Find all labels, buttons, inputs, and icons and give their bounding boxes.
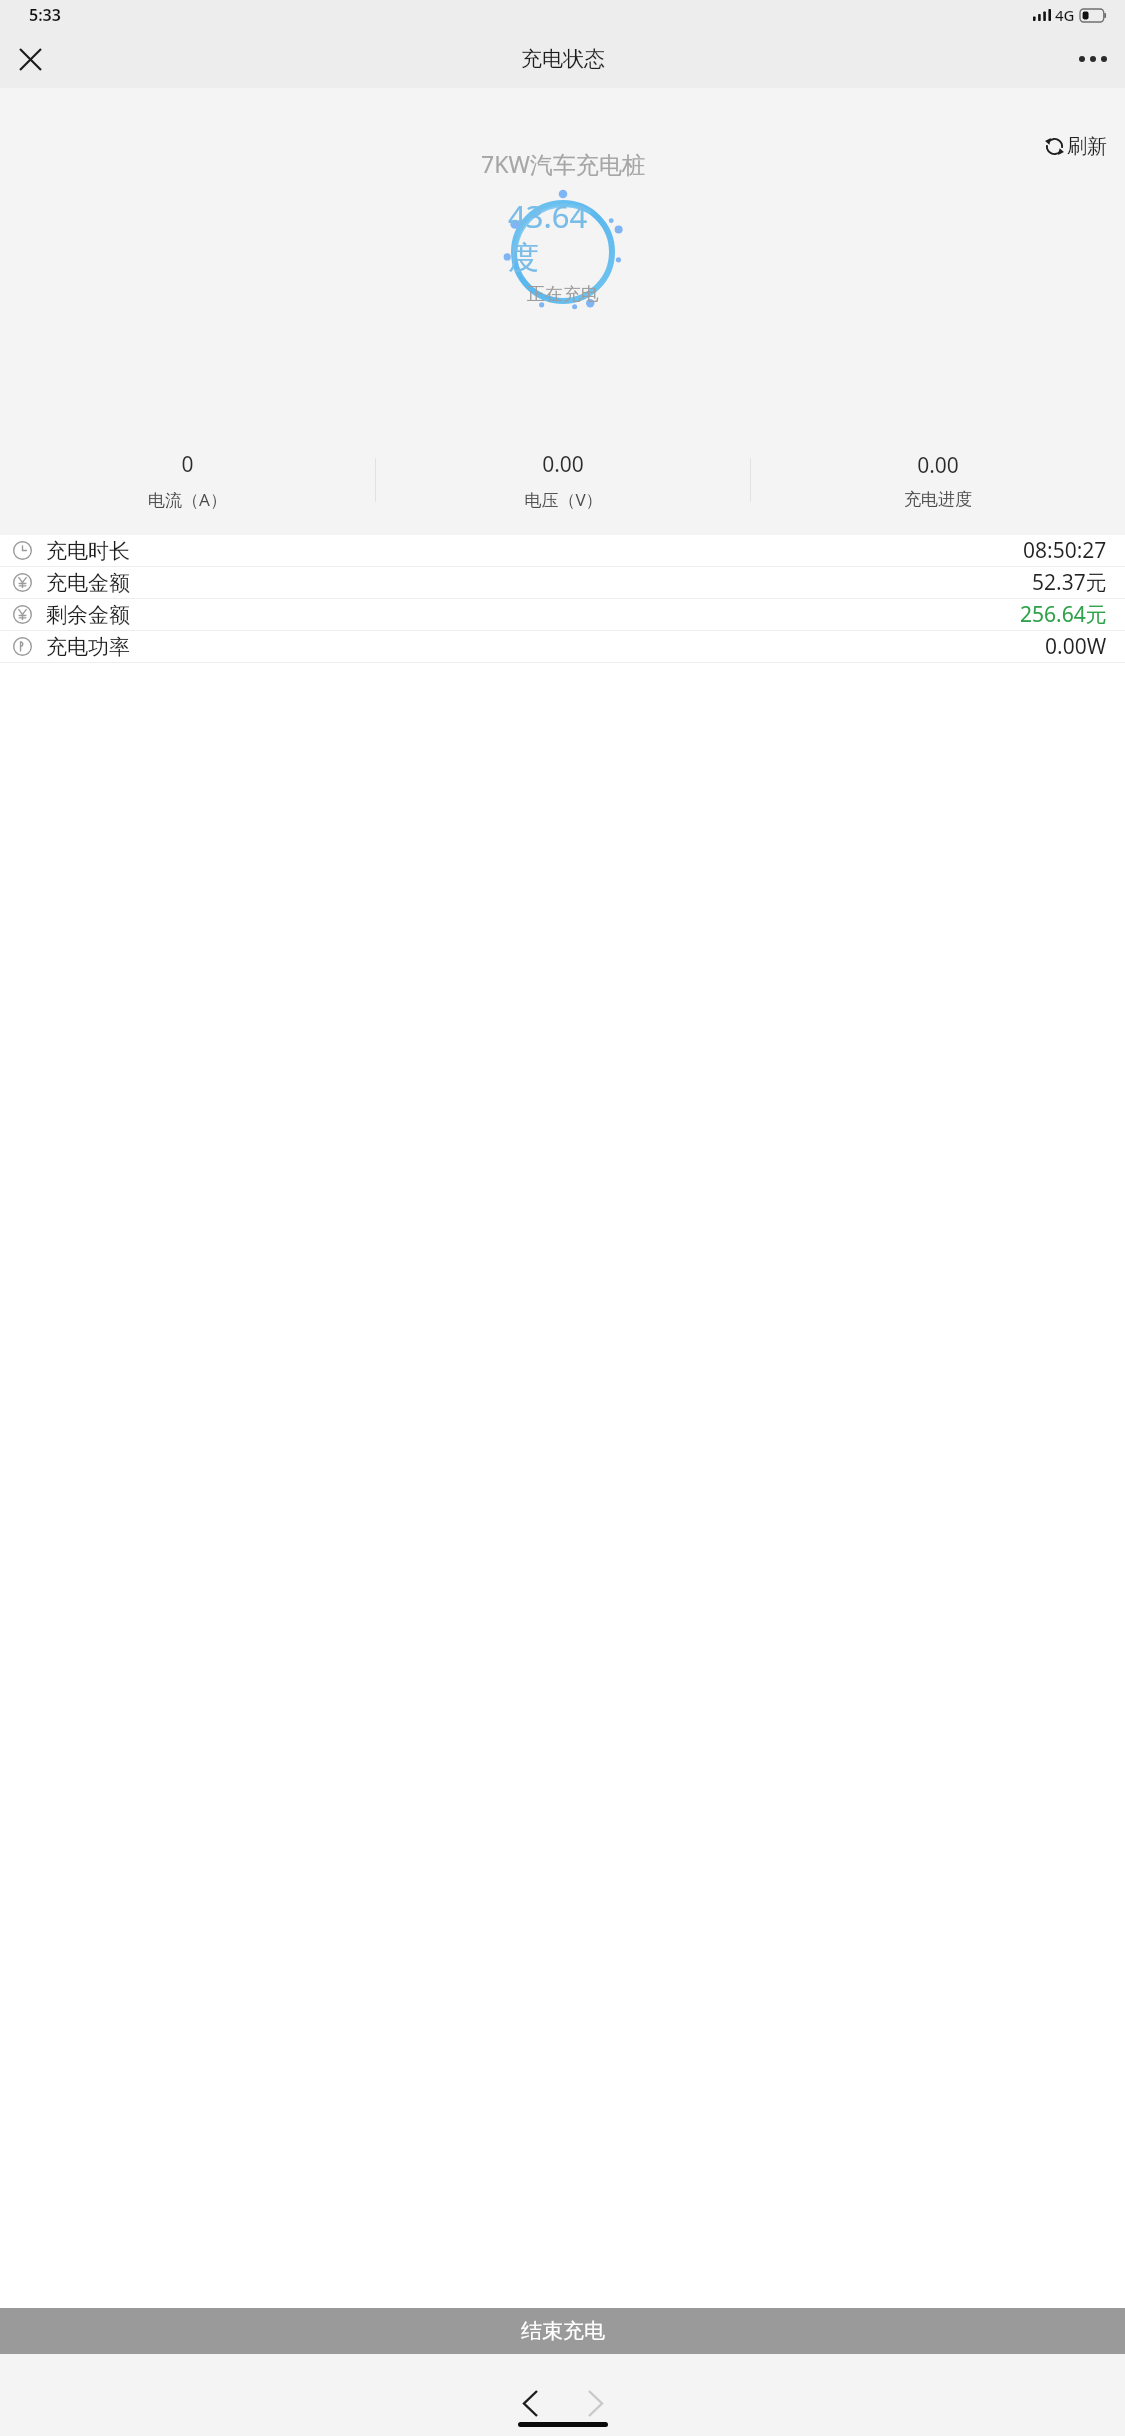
staticText: 7KW汽车充电桩 — [481, 148, 645, 179]
staticText: 结束充电 — [521, 2318, 605, 2344]
staticText: 电流（A） — [148, 488, 227, 511]
staticText: 刷新 — [1067, 134, 1107, 159]
staticText: 0.00 — [542, 450, 584, 479]
button[interactable]: 充电时长 — [0, 535, 1125, 566]
staticText: 43.64度 — [508, 195, 618, 277]
staticText: 0.00 — [917, 451, 959, 480]
staticText: 08:50:27 — [1023, 536, 1107, 565]
staticText: 4G — [1055, 5, 1075, 25]
button[interactable]: 充电金额 — [0, 567, 1125, 598]
button[interactable]: Back — [507, 2380, 553, 2426]
staticText: 5:33 — [29, 4, 61, 26]
button[interactable]: Forward — [572, 2380, 618, 2426]
staticText: 0.00W — [1045, 632, 1107, 661]
staticText: 0 — [181, 450, 194, 479]
button[interactable]: Close — [6, 35, 54, 83]
staticText: 充电进度 — [904, 489, 972, 510]
staticText: 充电功率 — [46, 634, 130, 660]
staticText: 电压（V） — [524, 488, 603, 511]
staticText: 正在充电 — [527, 283, 599, 306]
staticText: 52.37元 — [1032, 568, 1107, 597]
staticText: 充电状态 — [521, 46, 605, 72]
button[interactable]: More options — [1069, 35, 1117, 83]
staticText: 256.64元 — [1020, 600, 1107, 629]
staticText: 剩余金额 — [46, 602, 130, 628]
button[interactable]: 充电功率 — [0, 631, 1125, 662]
button[interactable]: 刷新 — [1041, 130, 1111, 163]
staticText: 充电时长 — [46, 538, 130, 564]
button[interactable]: 结束充电 — [0, 2308, 1125, 2354]
staticText: 充电金额 — [46, 570, 130, 596]
button[interactable]: 剩余金额 — [0, 599, 1125, 630]
